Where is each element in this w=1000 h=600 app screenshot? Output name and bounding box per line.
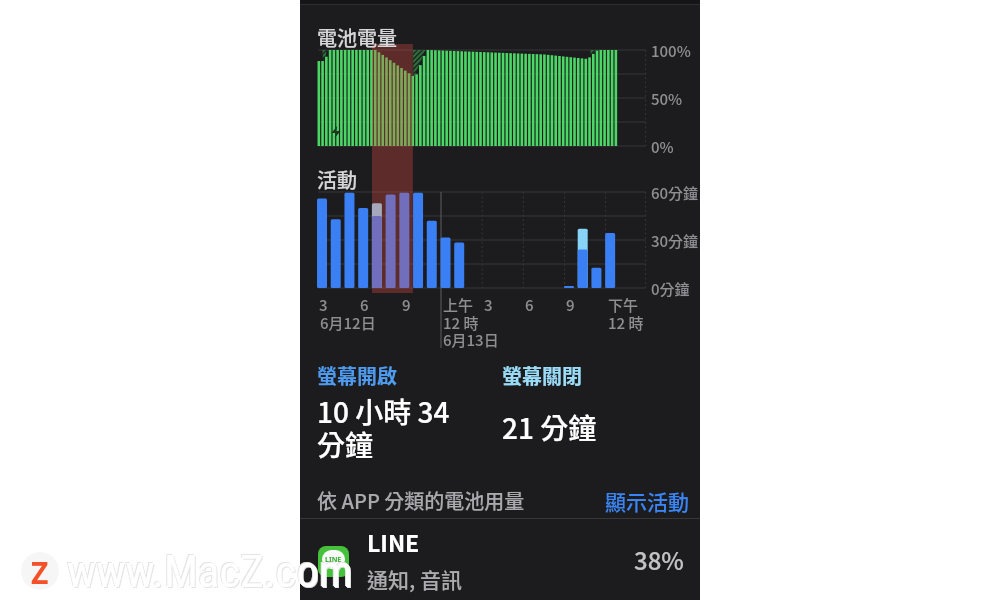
- staticText: 0%: [651, 136, 674, 158]
- staticText: www.MacZ.com: [67, 545, 353, 598]
- staticText: 21 分鐘: [502, 407, 597, 448]
- staticText: 6: [360, 294, 369, 316]
- staticText: 0分鐘: [651, 278, 690, 300]
- staticText: 6: [525, 294, 534, 316]
- staticText: 依 APP 分類的電池用量: [317, 486, 525, 515]
- staticText: 30分鐘: [651, 230, 699, 252]
- staticText: 活動: [317, 165, 357, 194]
- staticText: LINE: [325, 555, 342, 565]
- staticText: www.MacZ.com: [68, 546, 354, 599]
- staticText: 螢幕開啟: [317, 361, 397, 390]
- button[interactable]: 顯示活動: [604, 486, 690, 516]
- staticText: 100%: [651, 40, 691, 62]
- staticText: 下午: [608, 294, 639, 316]
- staticText: 12 時: [608, 312, 644, 334]
- staticText: 上午: [443, 294, 474, 316]
- staticText: 9: [566, 294, 575, 316]
- staticText: 10 小時 34 分鐘: [317, 391, 450, 464]
- staticText: LINE: [367, 525, 420, 558]
- staticText: www.MacZ.com: [66, 544, 352, 597]
- staticText: 12 時: [443, 312, 479, 334]
- staticText: 通知, 音訊: [367, 564, 462, 594]
- staticText: 50%: [651, 88, 683, 110]
- staticText: 9: [402, 294, 411, 316]
- staticText: Z: [31, 552, 49, 590]
- button[interactable]: LINE: [300, 519, 700, 600]
- staticText: 6月13日: [443, 329, 499, 351]
- staticText: 6月12日: [320, 312, 376, 334]
- staticText: 螢幕關閉: [502, 361, 582, 390]
- staticText: 3: [484, 294, 493, 316]
- staticText: 3: [319, 294, 328, 316]
- staticText: 60分鐘: [651, 182, 699, 204]
- staticText: 38%: [634, 542, 684, 577]
- staticText: 電池電量: [317, 23, 397, 52]
- staticText: 顯示活動: [605, 486, 689, 516]
